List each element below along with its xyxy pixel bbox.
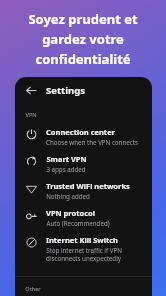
staticText: Other <box>25 285 41 291</box>
staticText: Stop internet traffic if VPN <box>46 246 122 254</box>
staticText: Soyez prudent et <box>28 10 138 28</box>
staticText: Settings <box>46 84 85 97</box>
staticText: Trusted WiFi networks <box>46 181 130 191</box>
staticText: disconnects unexpectedly <box>46 254 121 262</box>
button[interactable]: Connection center <box>15 123 152 150</box>
button[interactable]: VPN protocol <box>15 204 152 231</box>
button[interactable]: Smart VPN <box>15 150 152 177</box>
staticText: Nothing added <box>46 192 90 200</box>
staticText: gardez votre <box>42 30 124 48</box>
staticText: confidentialité <box>35 50 131 68</box>
button[interactable]: Back <box>23 82 39 98</box>
staticText: 3 apps added <box>46 165 86 173</box>
button[interactable]: Trusted WiFi networks <box>15 177 152 204</box>
staticText: Smart VPN <box>46 154 87 164</box>
staticText: Internet Kill Switch <box>46 235 118 245</box>
staticText: Auto (Recommended) <box>46 219 110 227</box>
staticText: Choose when the VPN connects <box>46 138 138 146</box>
button[interactable]: Internet Kill Switch <box>15 231 152 266</box>
staticText: VPN <box>25 111 37 118</box>
staticText: Connection center <box>46 127 115 137</box>
staticText: VPN protocol <box>46 208 95 218</box>
